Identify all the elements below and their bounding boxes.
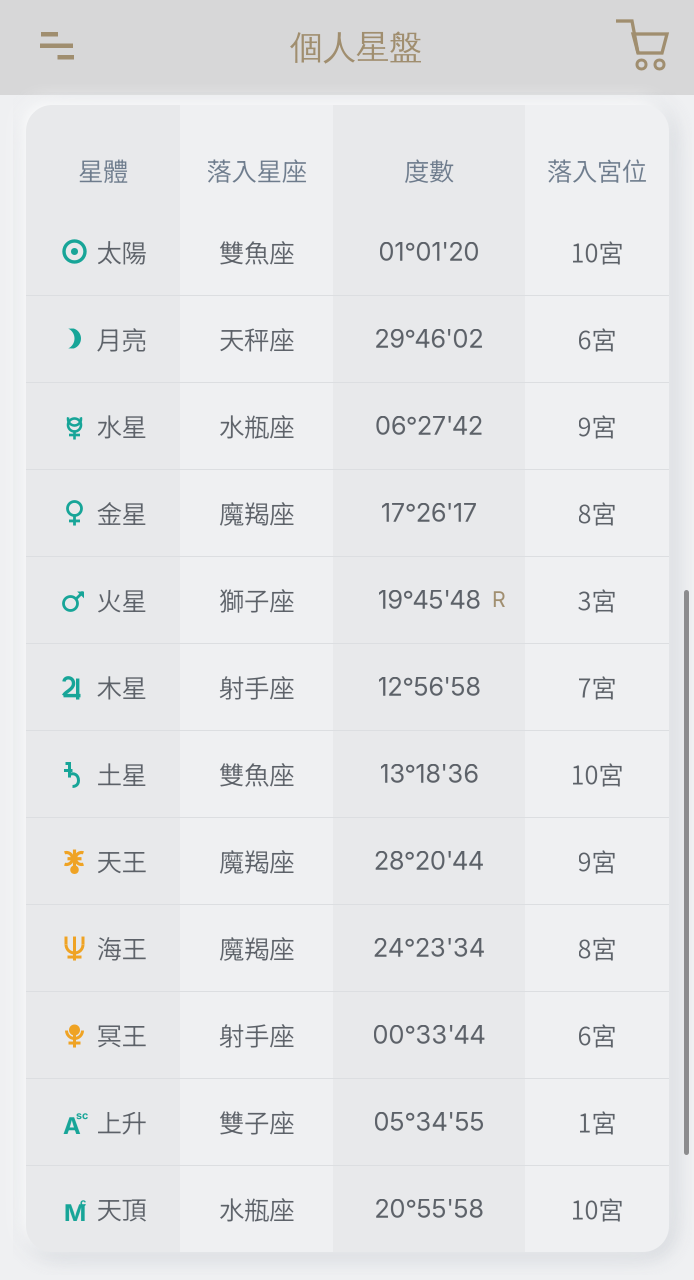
staticText: R <box>492 587 506 612</box>
staticText: 29°46'02 <box>374 323 483 354</box>
staticText: 10宮 <box>570 1190 623 1227</box>
staticText: A <box>63 1111 81 1140</box>
staticText: 水瓶座 <box>219 407 294 444</box>
staticText: 24°23'34 <box>373 932 485 963</box>
staticText: 12°56'58 <box>377 671 480 702</box>
staticText: 天王 <box>96 842 146 879</box>
staticText: M <box>64 1198 86 1227</box>
staticText: 水瓶座 <box>219 1190 294 1227</box>
staticText: 06°27'42 <box>375 410 483 441</box>
staticText: 10宮 <box>570 233 623 270</box>
staticText: 28°20'44 <box>374 845 484 876</box>
staticText: 水星 <box>96 407 146 444</box>
staticText: 3宮 <box>577 581 616 618</box>
staticText: 火星 <box>96 581 146 618</box>
button[interactable]: Menu <box>0 0 100 95</box>
staticText: 8宮 <box>577 494 616 531</box>
staticText: 木星 <box>96 668 146 705</box>
staticText: 金星 <box>96 494 146 531</box>
staticText: 雙魚座 <box>219 233 294 270</box>
staticText: 落入星座 <box>206 151 306 188</box>
staticText: 雙子座 <box>219 1103 294 1140</box>
staticText: 月亮 <box>96 320 146 357</box>
staticText: 落入宮位 <box>547 151 647 188</box>
staticText: 射手座 <box>219 668 294 705</box>
staticText: 魔羯座 <box>219 842 294 879</box>
staticText: 上升 <box>96 1103 146 1140</box>
staticText: 魔羯座 <box>219 494 294 531</box>
staticText: 6宮 <box>577 320 616 357</box>
staticText: 10宮 <box>570 755 623 792</box>
staticText: 度數 <box>404 151 454 188</box>
staticText: 9宮 <box>577 842 616 879</box>
staticText: 1宮 <box>577 1103 616 1140</box>
staticText: 冥王 <box>96 1016 146 1053</box>
staticText: 17°26'17 <box>381 497 477 528</box>
staticText: 天頂 <box>96 1190 146 1227</box>
staticText: 獅子座 <box>219 581 294 618</box>
staticText: 19°45'48 <box>377 584 480 615</box>
staticText: 05°34'55 <box>373 1106 484 1137</box>
staticText: 13°18'36 <box>379 758 478 789</box>
staticText: sc <box>76 1109 88 1122</box>
staticText: 01°01'20 <box>378 236 479 267</box>
staticText: 6宮 <box>577 1016 616 1053</box>
staticText: 20°55'58 <box>374 1193 483 1224</box>
staticText: 魔羯座 <box>219 929 294 966</box>
staticText: 7宮 <box>577 668 616 705</box>
staticText: c <box>80 1196 86 1209</box>
staticText: 9宮 <box>577 407 616 444</box>
staticText: 射手座 <box>219 1016 294 1053</box>
button[interactable]: Shopping cart <box>600 0 694 95</box>
staticText: 00°33'44 <box>372 1019 485 1050</box>
staticText: 天秤座 <box>219 320 294 357</box>
staticText: 星體 <box>78 151 128 188</box>
staticText: 海王 <box>96 929 146 966</box>
staticText: 8宮 <box>577 929 616 966</box>
staticText: 太陽 <box>96 233 146 270</box>
staticText: 個人星盤 <box>290 26 422 68</box>
staticText: 土星 <box>96 755 146 792</box>
staticText: 雙魚座 <box>219 755 294 792</box>
